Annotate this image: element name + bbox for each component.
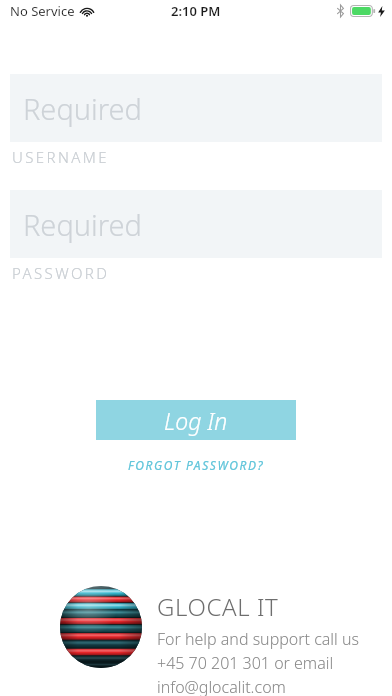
- staticText: Required: [23, 205, 142, 244]
- staticText: PASSWORD: [12, 263, 110, 283]
- staticText: FORGOT PASSWORD?: [128, 457, 265, 473]
- staticText: 2:10 PM: [171, 2, 221, 20]
- staticText: info@glocalit.com: [157, 676, 286, 696]
- button[interactable]: Required: [10, 190, 382, 258]
- staticText: USERNAME: [12, 147, 109, 167]
- staticText: +45 70 201 301 or email: [157, 652, 334, 674]
- button[interactable]: FORGOT PASSWORD?: [106, 453, 286, 477]
- staticText: Log In: [164, 405, 228, 436]
- button[interactable]: Log In: [96, 400, 296, 440]
- staticText: GLOCAL IT: [157, 590, 279, 623]
- button[interactable]: Required: [10, 74, 382, 142]
- staticText: Required: [23, 89, 142, 128]
- staticText: No Service: [10, 2, 75, 20]
- staticText: For help and support call us: [157, 628, 359, 650]
